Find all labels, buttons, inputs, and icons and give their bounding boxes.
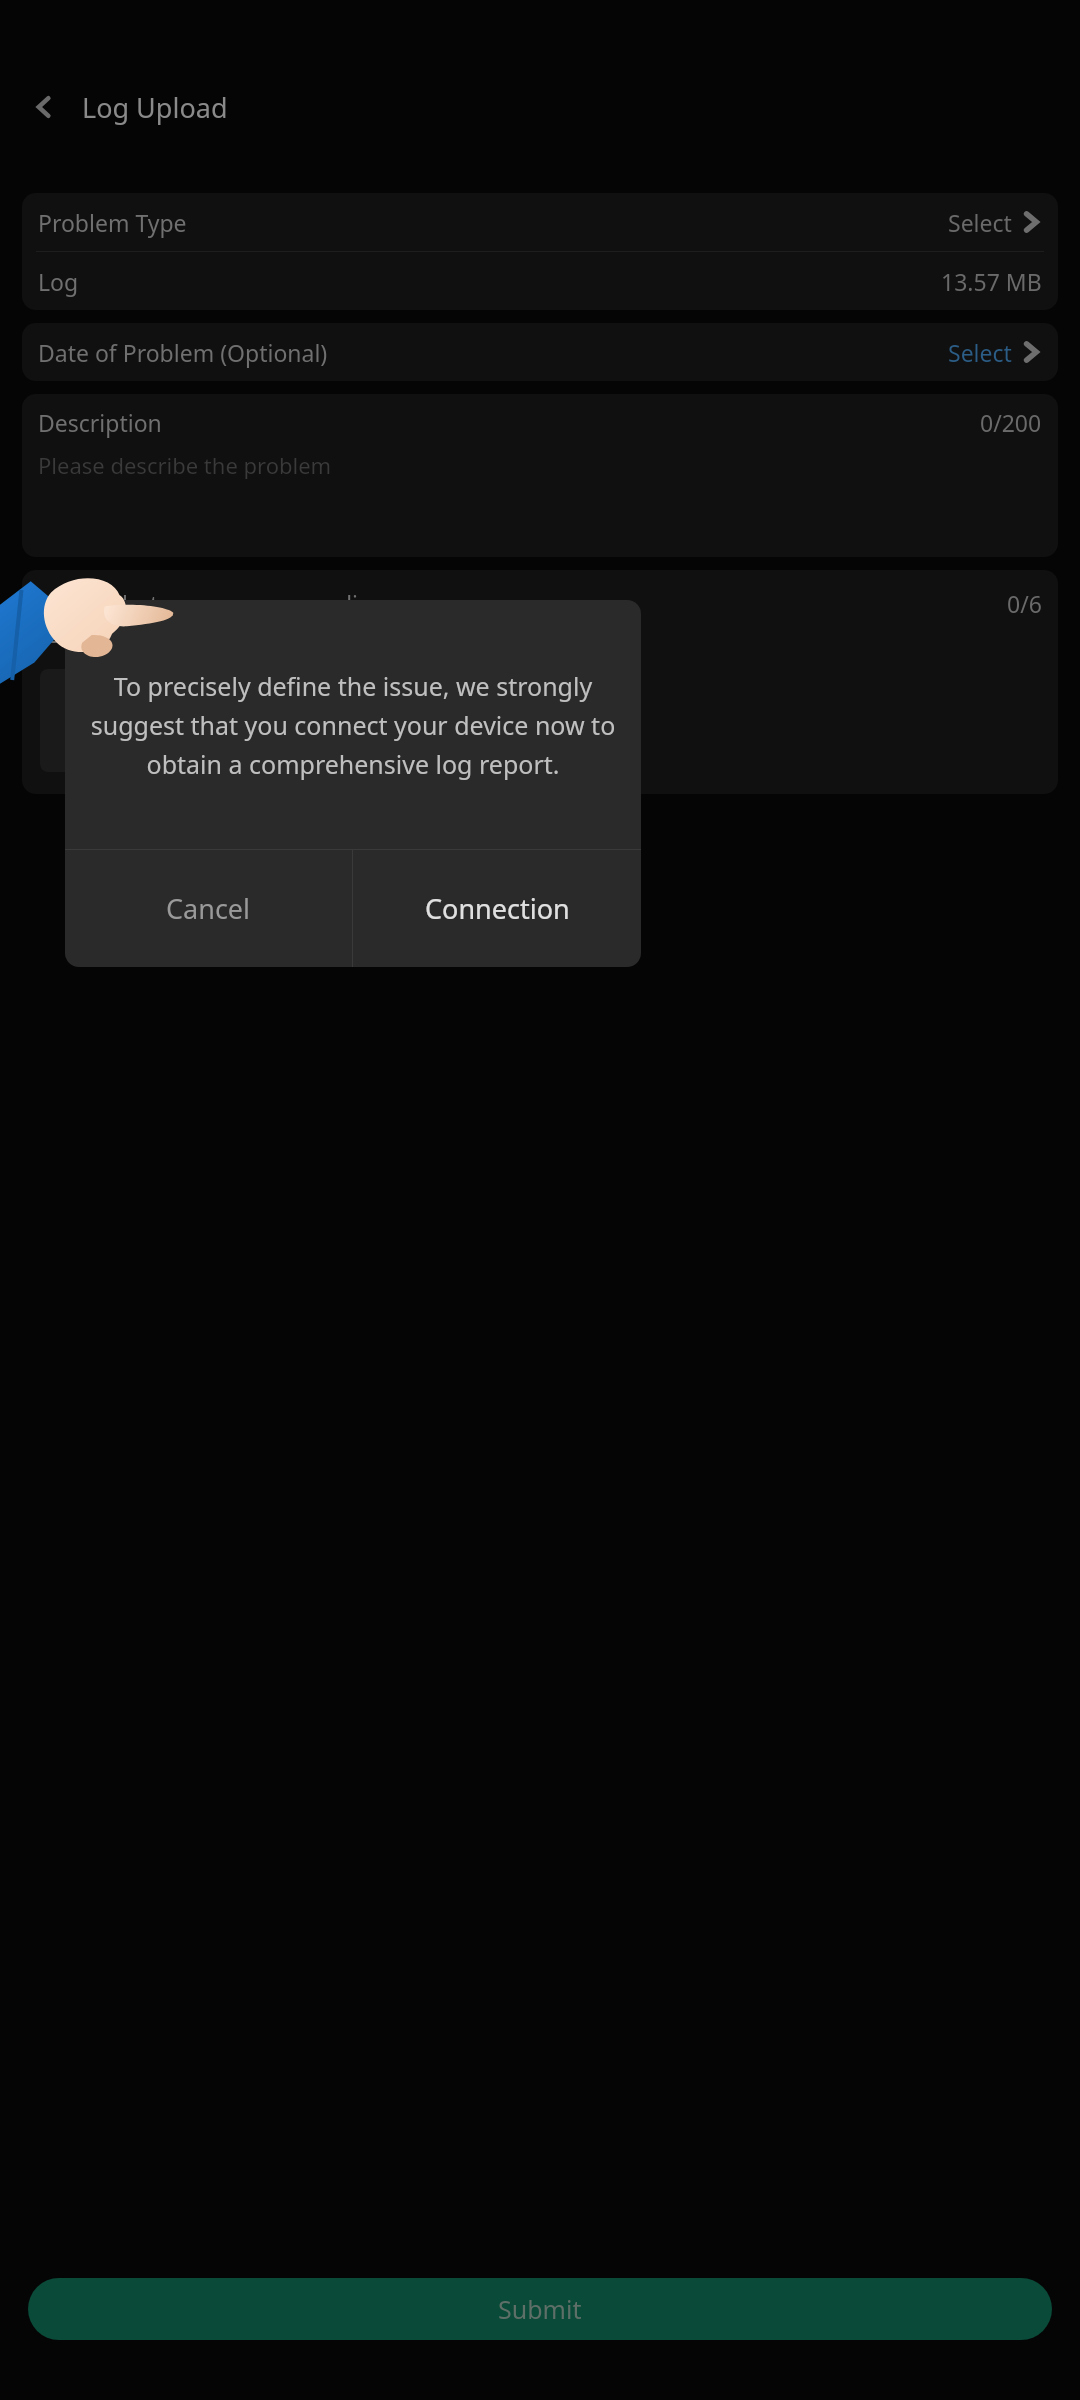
- staticText: Select: [948, 207, 1012, 238]
- button[interactable]: Add attachment: [40, 669, 122, 772]
- staticText: Log Upload: [82, 89, 228, 126]
- staticText: 13.57 MB: [941, 266, 1042, 297]
- button[interactable]: Date of Problem (Optional): [22, 323, 1058, 381]
- staticText: Submit: [498, 2292, 582, 2326]
- staticText: Connection: [425, 890, 570, 927]
- staticText: Please describe the problem: [38, 450, 332, 480]
- button[interactable]: Back: [18, 81, 70, 133]
- staticText: Select: [948, 337, 1012, 368]
- button[interactable]: Please describe the problem: [22, 450, 1058, 557]
- staticText: Cancel: [166, 890, 251, 927]
- staticText: 0/200: [980, 407, 1042, 438]
- staticText: Problem Type: [38, 207, 187, 238]
- button[interactable]: Cancel: [65, 850, 352, 967]
- staticText: 0/6: [1007, 588, 1042, 619]
- button[interactable]: Problem Type: [22, 193, 1058, 251]
- button[interactable]: Log: [22, 252, 1058, 310]
- staticText: To precisely define the issue, we strong…: [89, 669, 617, 781]
- staticText: Date of Problem (Optional): [38, 337, 328, 368]
- staticText: Screenshots or screen recordings (Option…: [38, 588, 398, 649]
- button[interactable]: Connection: [353, 850, 641, 967]
- staticText: Description: [38, 407, 162, 438]
- button[interactable]: Submit: [28, 2278, 1052, 2340]
- staticText: Log: [38, 266, 79, 297]
